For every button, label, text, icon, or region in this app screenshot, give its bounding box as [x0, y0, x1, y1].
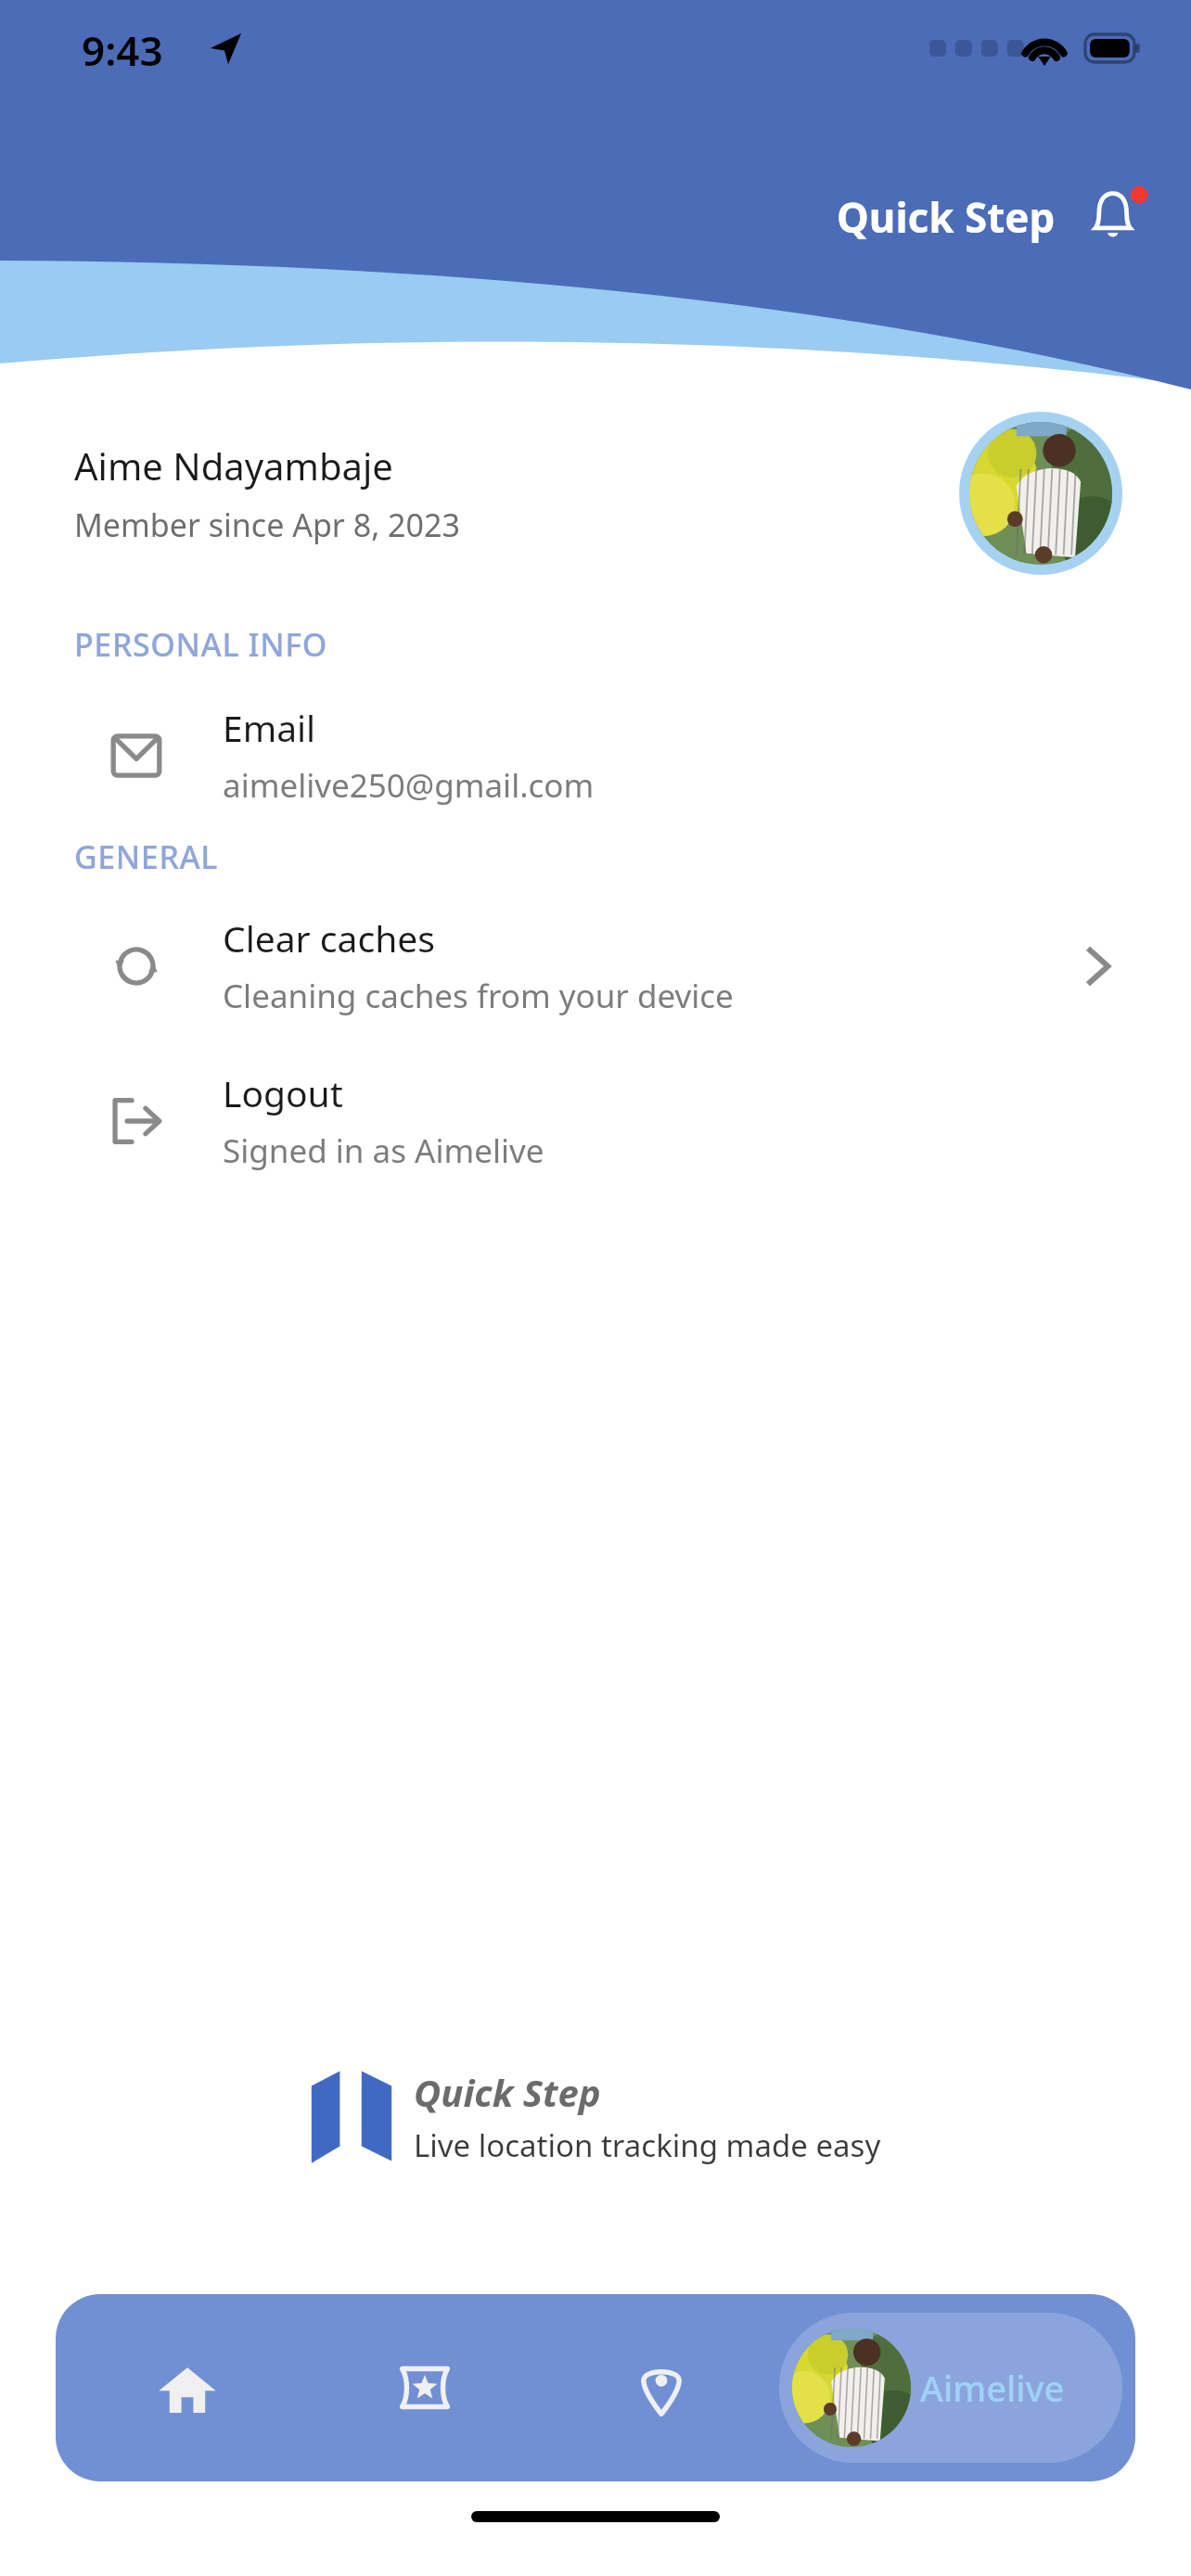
button[interactable]: Aimelive [779, 2313, 1122, 2463]
button[interactable]: Tickets [306, 2294, 543, 2481]
button[interactable]: Notifications [1080, 182, 1150, 252]
staticText: Clear caches [223, 913, 435, 963]
staticText: Aime Ndayambaje [74, 440, 393, 491]
staticText: Aimelive [920, 2364, 1065, 2412]
staticText: Quick Step [414, 2067, 601, 2117]
staticText: GENERAL [74, 835, 219, 878]
button[interactable]: Aime Ndayambaje [0, 412, 1191, 575]
staticText: aimelive250@gmail.com [223, 763, 595, 808]
staticText: PERSONAL INFO [74, 623, 327, 666]
staticText: Live location tracking made easy [414, 2124, 881, 2166]
staticText: Member since Apr 8, 2023 [74, 504, 460, 546]
button[interactable]: Clear caches [0, 906, 1191, 1026]
staticText: Email [223, 703, 316, 752]
button[interactable]: Logout [0, 1061, 1191, 1180]
button[interactable]: Location [543, 2294, 779, 2481]
staticText: Logout [223, 1068, 343, 1117]
staticText: Signed in as Aimelive [223, 1129, 544, 1173]
button[interactable]: Email [0, 695, 1191, 815]
staticText: 9:43 [82, 22, 163, 78]
button[interactable]: Home [69, 2294, 306, 2481]
staticText: Quick Step [837, 189, 1056, 245]
staticText: Cleaning caches from your device [223, 974, 734, 1018]
